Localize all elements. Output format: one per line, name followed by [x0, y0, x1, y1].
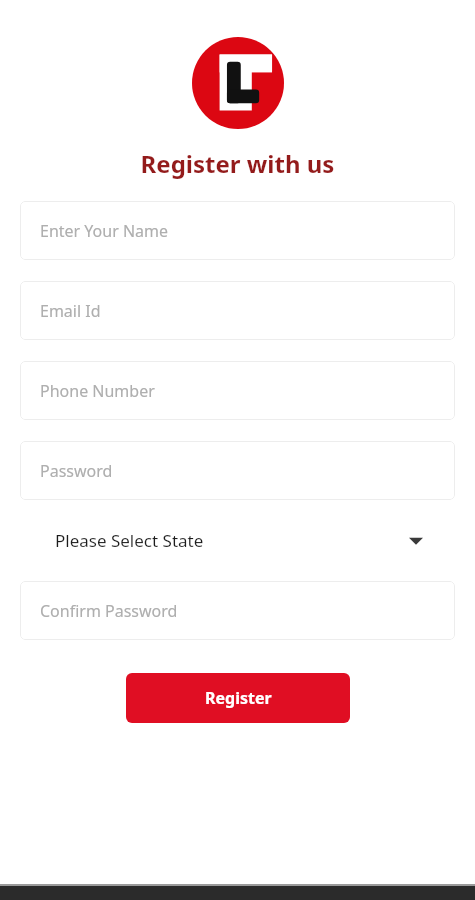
other: Open state list [409, 536, 423, 546]
staticText: Enter Your Name [40, 220, 169, 242]
button[interactable]: Register [126, 673, 350, 723]
staticText: Register [205, 687, 272, 709]
staticText: Register with us [0, 147, 475, 180]
staticText: Phone Number [40, 380, 155, 402]
button[interactable]: Confirm Password [20, 581, 455, 640]
button[interactable]: Enter Your Name [20, 201, 455, 260]
staticText: Confirm Password [40, 600, 178, 622]
staticText: Password [40, 460, 113, 482]
staticText: Email Id [40, 300, 101, 322]
button[interactable]: Phone Number [20, 361, 455, 420]
other: App logo [192, 37, 284, 129]
staticText: Please Select State [55, 529, 204, 552]
button[interactable]: Please Select State [0, 500, 475, 581]
button[interactable]: Password [20, 441, 455, 500]
button[interactable]: Email Id [20, 281, 455, 340]
